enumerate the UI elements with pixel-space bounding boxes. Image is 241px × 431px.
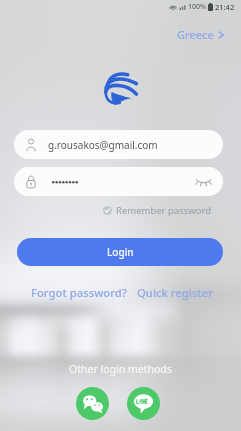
button[interactable]: g.rousakos@gmail.com <box>14 130 223 159</box>
staticText: 21:42 <box>215 2 235 12</box>
staticText: Quick register <box>137 285 213 300</box>
staticText: 100% <box>188 2 206 12</box>
button[interactable]: Quick register <box>135 283 215 302</box>
staticText: Login <box>107 245 134 259</box>
button[interactable]: Login <box>17 238 223 266</box>
button[interactable]: Show password <box>195 172 212 192</box>
staticText: Greece <box>177 27 214 42</box>
staticText: Remember password <box>116 204 212 217</box>
button[interactable]: LINE login <box>127 387 160 420</box>
button[interactable]: Greece <box>175 25 227 44</box>
button[interactable]: WeChat login <box>76 387 109 420</box>
button[interactable]: Forgot password? <box>29 283 129 302</box>
staticText: g.rousakos@gmail.com <box>48 138 158 152</box>
staticText: Forgot password? <box>31 285 127 300</box>
staticText: Other login methods <box>69 362 172 376</box>
button[interactable]: Remember password <box>101 202 214 219</box>
